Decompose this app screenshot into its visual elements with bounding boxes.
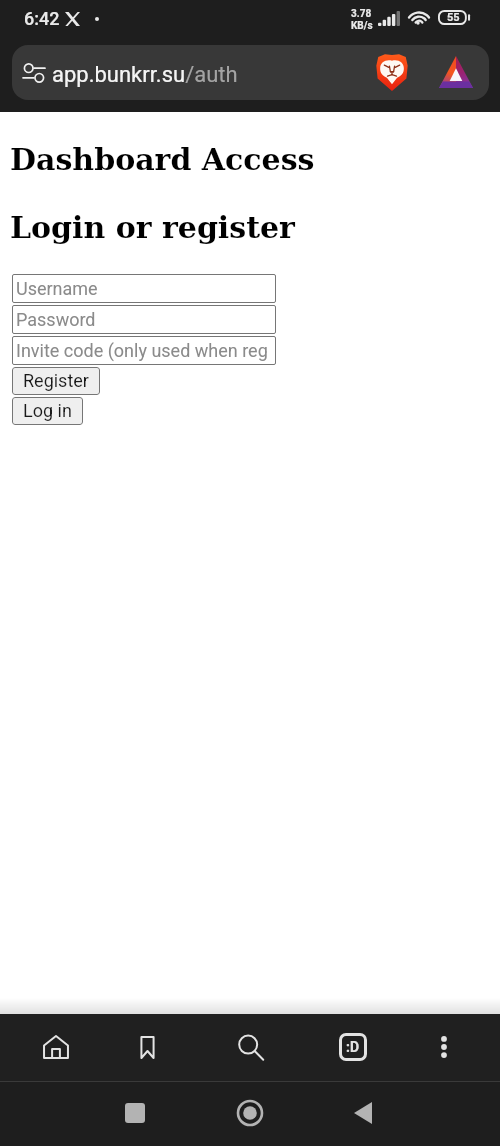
- button[interactable]: Tabs: [329, 1023, 377, 1071]
- button[interactable]: Register: [12, 367, 100, 395]
- button[interactable]: Search: [226, 1023, 274, 1071]
- staticText: KB/s: [351, 20, 373, 32]
- button[interactable]: Username: [12, 274, 276, 303]
- button[interactable]: Home: [32, 1023, 80, 1071]
- button[interactable]: Bookmarks: [123, 1023, 171, 1071]
- button[interactable]: Site settings: [12, 45, 489, 100]
- staticText: Invite code (only used when reg: [16, 340, 268, 361]
- button[interactable]: Home: [226, 1089, 274, 1137]
- button[interactable]: Site settings: [12, 50, 56, 94]
- button[interactable]: Brave Shields: [376, 54, 408, 91]
- button[interactable]: Recents: [111, 1089, 159, 1137]
- staticText: Dashboard Access: [10, 142, 315, 177]
- staticText: 3.78: [351, 8, 372, 20]
- staticText: Password: [16, 309, 96, 330]
- button[interactable]: Password: [12, 305, 276, 334]
- staticText: :D: [346, 1039, 360, 1055]
- button[interactable]: Invite code (only used when reg: [12, 336, 276, 365]
- staticText: app.bunkrr.su/auth: [52, 62, 238, 88]
- button[interactable]: More options: [420, 1023, 468, 1071]
- staticText: 6:42: [24, 8, 60, 29]
- button[interactable]: Log in: [12, 397, 83, 425]
- staticText: Register: [23, 370, 89, 391]
- staticText: 55: [447, 11, 460, 24]
- button[interactable]: Brave Rewards: [439, 56, 473, 88]
- staticText: Login or register: [10, 210, 295, 245]
- button[interactable]: Back: [339, 1089, 387, 1137]
- staticText: Username: [16, 278, 98, 299]
- staticText: Log in: [23, 400, 72, 421]
